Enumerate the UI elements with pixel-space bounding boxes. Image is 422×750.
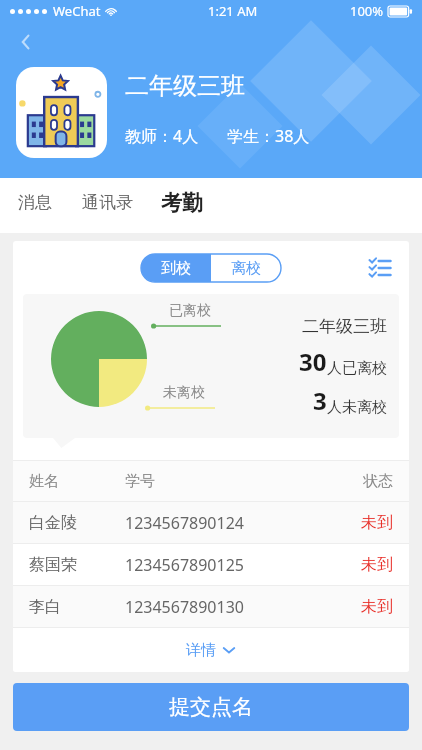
staticText: WeChat [53, 2, 101, 20]
staticText: 100% [350, 2, 384, 20]
staticText: 1234567890124 [125, 512, 244, 534]
staticText: 学生：38人 [227, 125, 310, 147]
button[interactable]: 考勤 [159, 180, 205, 226]
staticText: 姓名 [29, 472, 59, 491]
staticText: 1234567890125 [125, 554, 244, 576]
staticText: 未离校 [163, 384, 205, 402]
staticText: 消息 [18, 192, 52, 213]
button[interactable]: 白金陵 [13, 502, 409, 544]
staticText: 人已离校 [327, 359, 387, 378]
staticText: 提交点名 [169, 694, 253, 720]
staticText: 李白 [29, 597, 61, 617]
staticText: 未到 [361, 555, 393, 575]
staticText: 离校 [231, 259, 261, 278]
button[interactable]: 提交点名 [13, 683, 409, 731]
staticText: 二年级三班 [302, 316, 387, 337]
staticText: 1234567890130 [125, 596, 244, 618]
button[interactable]: 到校 [141, 254, 211, 282]
staticText: 通讯录 [82, 192, 133, 213]
staticText: 已离校 [169, 302, 211, 320]
staticText: 考勤 [161, 190, 203, 216]
staticText: 白金陵 [29, 513, 77, 533]
staticText: 教师：4人 [125, 125, 199, 147]
staticText: 二年级三班 [125, 71, 245, 101]
staticText: 未到 [361, 597, 393, 617]
button[interactable]: 蔡国荣 [13, 544, 409, 586]
staticText: 3 [313, 384, 327, 417]
button[interactable]: 详情 [13, 628, 409, 672]
button[interactable]: List view [365, 253, 395, 283]
staticText: 详情 [186, 641, 216, 660]
button[interactable]: 消息 [16, 178, 54, 227]
staticText: 学号 [125, 472, 155, 491]
staticText: 未到 [361, 513, 393, 533]
staticText: 蔡国荣 [29, 555, 77, 575]
button[interactable]: 李白 [13, 586, 409, 628]
staticText: 到校 [161, 259, 191, 278]
staticText: 人未离校 [327, 398, 387, 417]
button[interactable]: Class avatar [16, 67, 107, 158]
staticText: 状态 [363, 472, 393, 491]
button[interactable]: 离校 [211, 254, 281, 282]
staticText: 30 [299, 345, 327, 378]
button[interactable]: 通讯录 [80, 178, 135, 227]
button[interactable]: Back [6, 22, 46, 62]
staticText: 1:21 AM [208, 2, 258, 20]
